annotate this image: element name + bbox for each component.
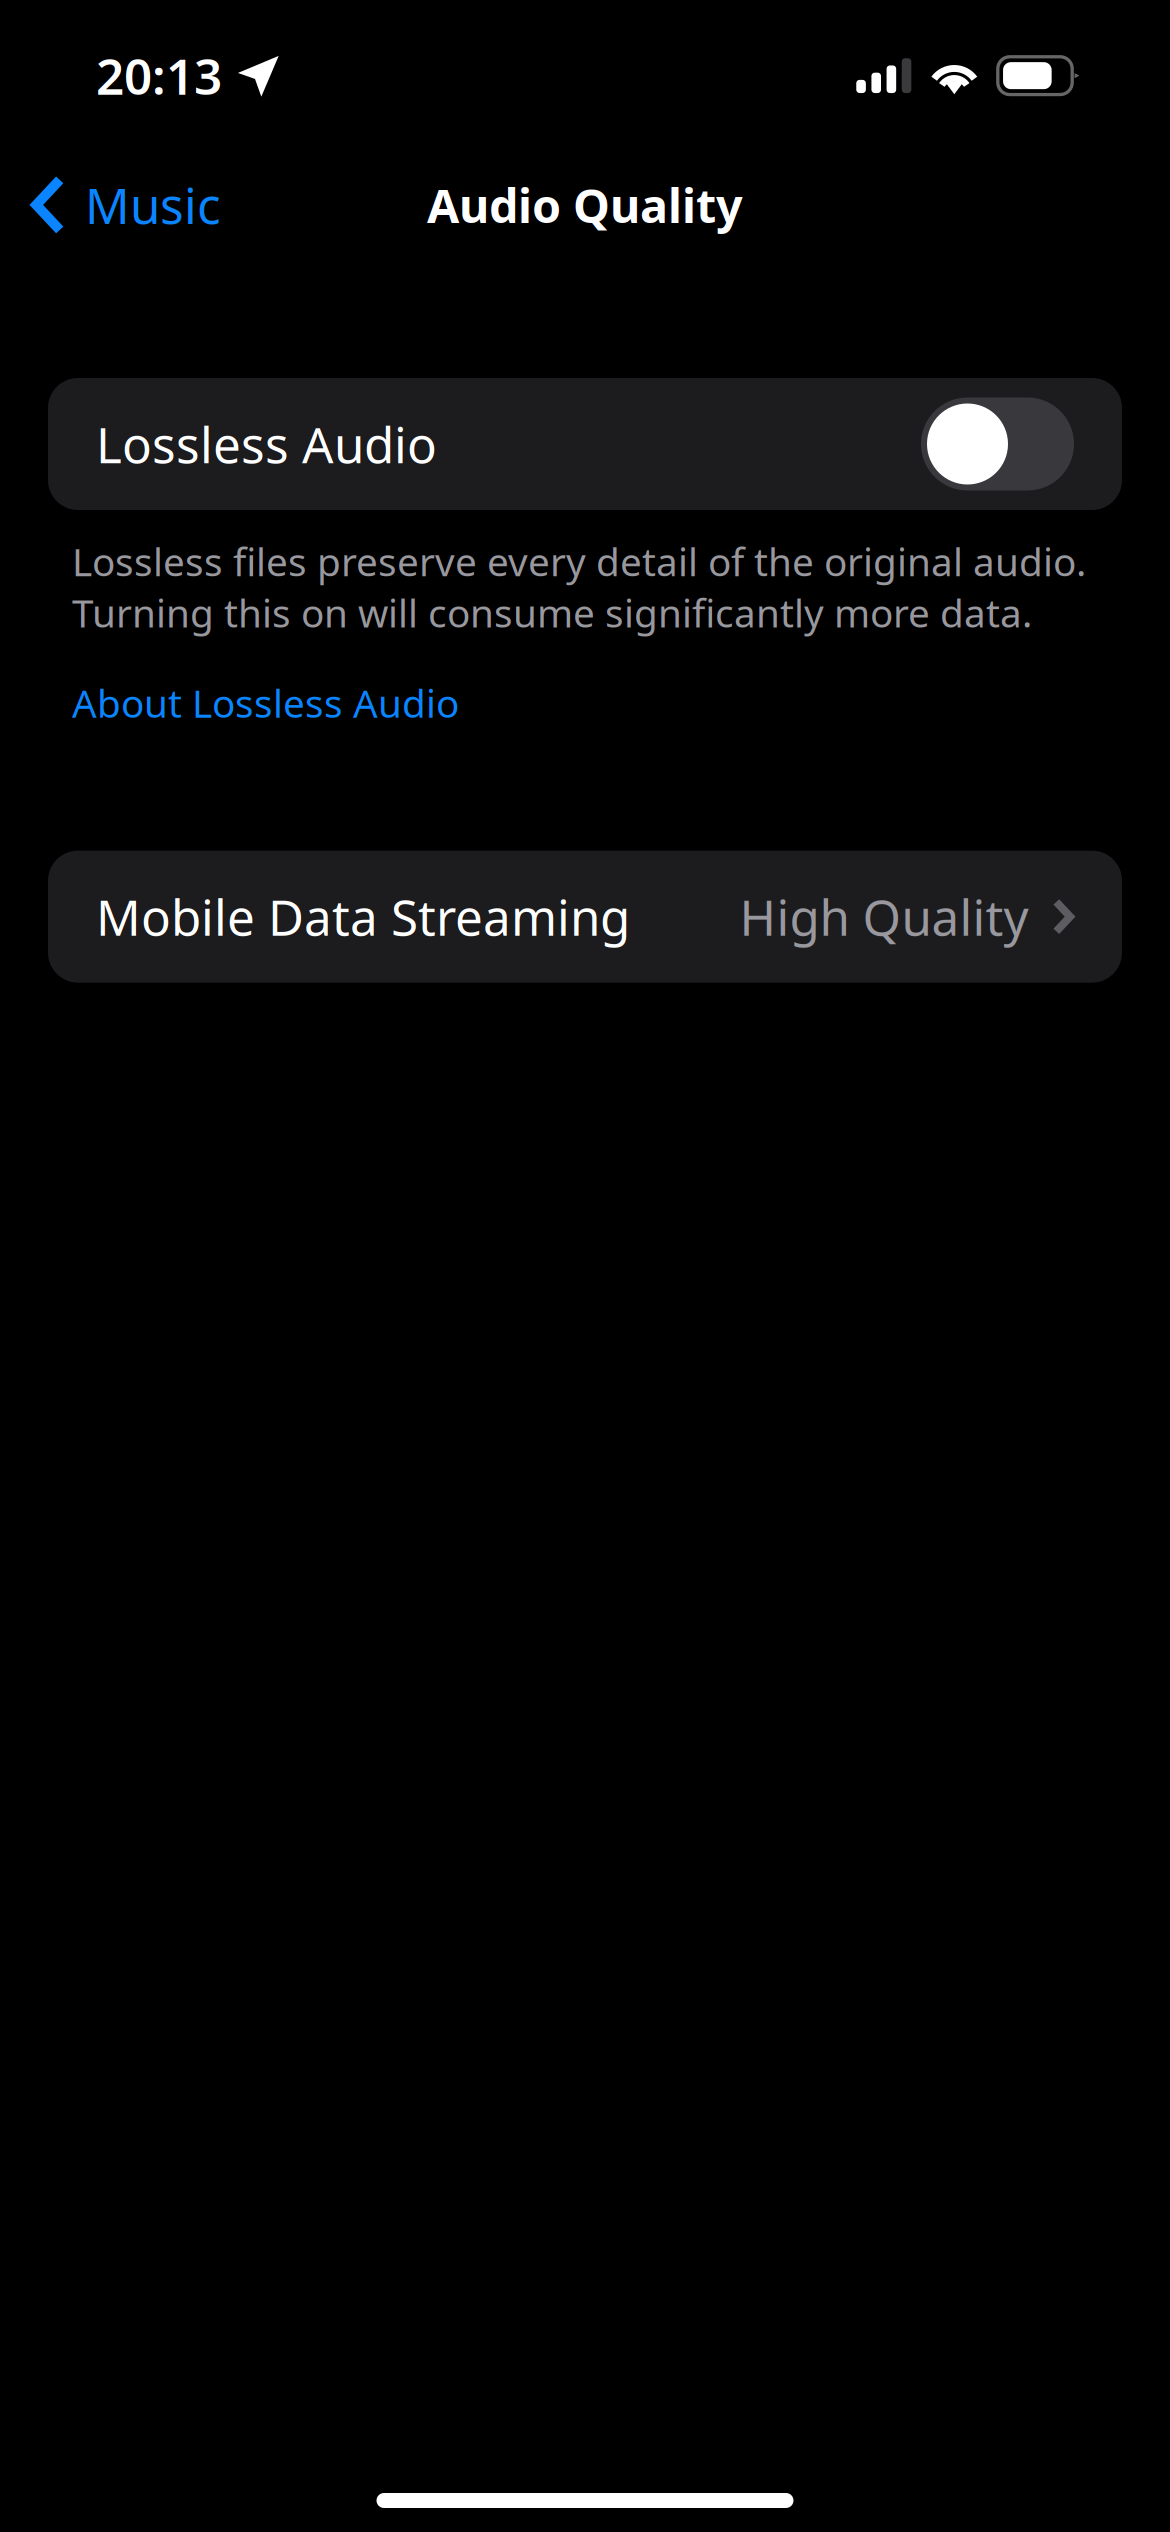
staticText: Mobile Data Streaming (96, 884, 630, 949)
staticText: About Lossless Audio (72, 677, 459, 728)
staticText: Lossless files preserve every detail of … (72, 535, 1086, 638)
button[interactable]: Mobile Data Streaming (48, 851, 1122, 983)
staticText: 20:13 (96, 43, 222, 108)
button[interactable]: Music (0, 151, 221, 259)
staticText: Music (85, 172, 221, 238)
staticText: Audio Quality (427, 174, 743, 236)
staticText: High Quality (739, 884, 1028, 949)
button[interactable]: About Lossless Audio (48, 638, 483, 728)
staticText: Lossless Audio (96, 411, 437, 477)
button[interactable]: Lossless Audio, off (921, 397, 1074, 490)
